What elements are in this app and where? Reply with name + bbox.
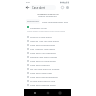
staticText: Track every case alert from one place (27, 30, 65, 33)
button[interactable]: Case alert support (27, 63, 68, 67)
staticText: Showing results for (37, 12, 59, 15)
staticText: Case alert login help (30, 72, 53, 75)
button[interactable]: What is a case alert? (27, 35, 68, 39)
button[interactable]: Case alert API reference (27, 51, 68, 55)
staticText: Sponsored (27, 20, 39, 23)
button[interactable]: Case alert release notes (27, 83, 68, 87)
button[interactable]: Can I export case alerts (27, 47, 68, 51)
button[interactable]: How do I set up case alerts (27, 39, 68, 43)
staticText: Can I export case alerts (30, 48, 56, 51)
button[interactable]: Sponsored (27, 20, 39, 23)
button[interactable]: Set up case alert on mobile (27, 67, 68, 71)
staticText: Case alert (32, 6, 46, 10)
button[interactable]: Home (46, 91, 50, 95)
staticText: Set up case alert on mobile (30, 68, 60, 71)
button[interactable]: Voice search (60, 5, 65, 10)
button[interactable]: Case alert vs case watch (27, 59, 68, 63)
button[interactable]: Case alert documentation (27, 75, 68, 79)
button[interactable]: Case management tool (42, 20, 69, 23)
staticText: Case alert vs case watch (30, 60, 56, 63)
staticText: ● ● ▲ ▮ ▮ (60, 1, 69, 4)
button[interactable]: Back (25, 5, 30, 10)
staticText: Case alert documentation (30, 76, 58, 79)
button[interactable]: Case alert login help (27, 71, 68, 75)
staticText: 9:41 (26, 1, 31, 4)
staticText: Disable case alert notices (30, 56, 58, 59)
staticText: Case alert pricing plans (30, 44, 56, 47)
staticText: Case alert release notes (30, 84, 56, 87)
staticText: Case alert support (30, 64, 50, 67)
staticText: casealert.co.uk (30, 26, 47, 29)
staticText: Case alert API reference (30, 52, 56, 55)
button[interactable]: Account (65, 5, 70, 10)
button[interactable]: casealert.co.uk (27, 24, 68, 30)
staticText: Case management tool (42, 20, 69, 23)
button[interactable]: Disable case alert notices (27, 55, 68, 59)
button[interactable]: Is case alert free to use (27, 79, 68, 83)
button[interactable]: Case alert pricing plans (27, 43, 68, 47)
staticText: Is case alert free to use (30, 80, 55, 83)
staticText: Search instead for (38, 15, 57, 18)
button[interactable]: Back (33, 91, 37, 95)
staticText: How do I set up case alerts (30, 40, 59, 43)
button[interactable]: Case alert (30, 5, 56, 10)
button[interactable]: Recent apps (58, 91, 62, 95)
staticText: What is a case alert? (30, 36, 52, 39)
